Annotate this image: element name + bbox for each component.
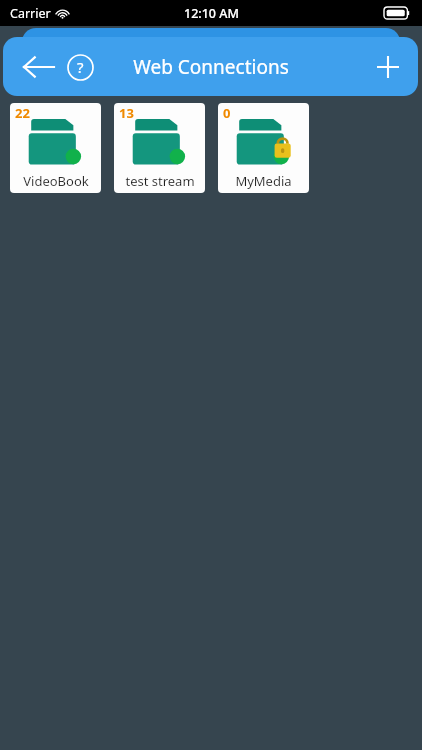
button[interactable]: Back [19,49,57,85]
button[interactable]: Help [63,50,97,84]
staticText: 12:10 AM [184,5,239,22]
staticText: 0 [223,104,231,122]
staticText: Carrier [10,5,51,22]
button[interactable]: Add connection [368,47,408,87]
button[interactable]: 22 [10,103,101,193]
staticText: ? [77,57,84,77]
staticText: test stream [125,172,195,190]
staticText: Web Connections [133,54,289,80]
staticText: 22 [15,104,30,122]
staticText: 13 [119,104,134,122]
staticText: MyMedia [235,172,292,190]
button[interactable]: 0 [218,103,309,193]
staticText: VideoBook [23,172,89,190]
button[interactable]: 13 [114,103,205,193]
